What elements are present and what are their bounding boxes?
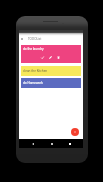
button[interactable]: Delete — [57, 56, 60, 59]
staticText: TODOList — [28, 37, 42, 41]
button[interactable]: Menu — [19, 36, 83, 42]
button[interactable]: Home — [49, 141, 54, 146]
staticText: do Homework — [23, 81, 43, 85]
staticText: clean the Kitchen — [23, 69, 48, 73]
button[interactable]: clean the Kitchen — [21, 66, 81, 76]
button[interactable]: Back — [30, 141, 35, 146]
button[interactable]: do Homework — [21, 78, 81, 88]
button[interactable]: Done — [41, 56, 44, 59]
button[interactable]: Menu — [20, 37, 24, 41]
staticText: do the laundry — [23, 47, 44, 51]
button[interactable]: Edit — [49, 56, 52, 59]
button[interactable]: Add task — [71, 128, 79, 136]
button[interactable]: do the laundry — [21, 45, 81, 63]
button[interactable]: Recent apps — [67, 141, 72, 146]
